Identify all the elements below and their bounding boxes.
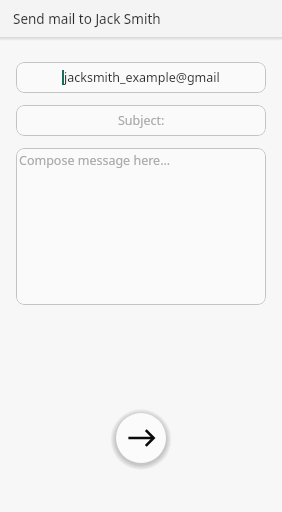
button[interactable]: Subject: bbox=[16, 105, 266, 136]
button[interactable]: Send bbox=[116, 413, 166, 463]
button[interactable]: jacksmith_example@gmail bbox=[16, 62, 266, 93]
staticText: Subject: bbox=[118, 112, 165, 129]
staticText: jacksmith_example@gmail bbox=[64, 69, 220, 86]
staticText: Compose message here... bbox=[19, 152, 171, 169]
staticText: Send mail to Jack Smith bbox=[13, 10, 161, 28]
button[interactable]: Compose message here... bbox=[16, 148, 266, 305]
